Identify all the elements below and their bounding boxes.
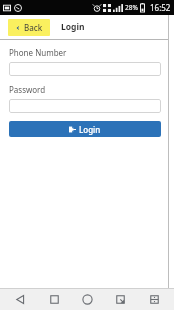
staticText: Login — [79, 124, 101, 135]
staticText: 16:52 — [150, 2, 171, 13]
button[interactable]: Back — [7, 289, 33, 310]
button[interactable]: Login — [9, 121, 161, 137]
staticText: Password — [9, 84, 46, 95]
staticText: 28% — [125, 3, 138, 12]
button[interactable]: Home — [41, 289, 67, 310]
staticText: Phone Number — [9, 47, 67, 58]
button[interactable] — [9, 99, 161, 113]
button[interactable]: Recents — [74, 289, 100, 310]
button[interactable]: Screenshot — [107, 289, 133, 310]
staticText: Login — [61, 21, 85, 33]
button[interactable]: Back — [8, 19, 50, 36]
staticText: Back — [24, 22, 43, 33]
button[interactable]: Split screen — [141, 289, 167, 310]
button[interactable] — [9, 62, 161, 76]
